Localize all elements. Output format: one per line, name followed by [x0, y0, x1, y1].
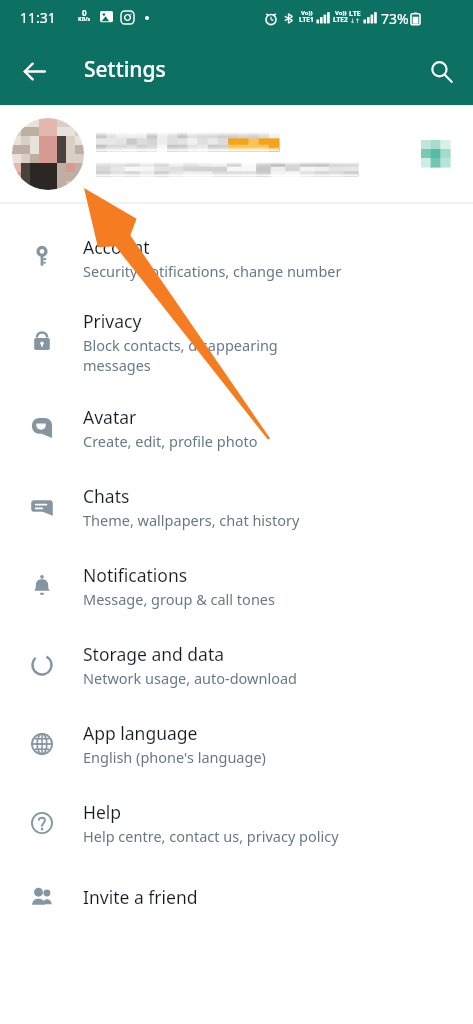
- staticText: KB/s: [78, 15, 91, 22]
- button[interactable]: Account: [0, 221, 473, 295]
- staticText: Settings: [84, 55, 166, 84]
- staticText: Chats: [83, 484, 130, 508]
- staticText: 73%: [381, 9, 409, 28]
- button[interactable]: Back: [12, 49, 56, 93]
- staticText: Privacy: [83, 309, 142, 333]
- staticText: Message, group & call tones: [83, 589, 275, 609]
- button[interactable]: Help: [0, 783, 473, 862]
- staticText: ↓↑: [350, 17, 361, 24]
- button[interactable]: Privacy: [0, 295, 473, 388]
- staticText: LTE: [349, 9, 361, 19]
- staticText: Account: [83, 235, 150, 259]
- staticText: Theme, wallpapers, chat history: [83, 510, 300, 530]
- button[interactable]: Chats: [0, 467, 473, 546]
- staticText: Storage and data: [83, 642, 225, 666]
- staticText: Security notifications, change number: [83, 261, 342, 281]
- button[interactable]: Storage and data: [0, 625, 473, 704]
- button[interactable]: Profile: [0, 105, 473, 202]
- staticText: 11:31: [20, 8, 56, 27]
- staticText: Block contacts, disappearing messages: [83, 335, 278, 375]
- staticText: 0: [82, 7, 87, 18]
- button[interactable]: App language: [0, 704, 473, 783]
- staticText: LTE2: [333, 15, 348, 24]
- staticText: Invite a friend: [83, 885, 198, 909]
- staticText: App language: [83, 721, 198, 745]
- staticText: Create, edit, profile photo: [83, 431, 258, 451]
- button[interactable]: Notifications: [0, 546, 473, 625]
- button[interactable]: Search: [418, 48, 464, 94]
- staticText: Help centre, contact us, privacy policy: [83, 826, 339, 846]
- staticText: Vo)): [301, 9, 313, 17]
- button[interactable]: Invite a friend: [0, 862, 473, 932]
- staticText: Avatar: [83, 405, 137, 429]
- staticText: LTE1: [299, 15, 314, 24]
- staticText: Vo)): [335, 9, 347, 17]
- button[interactable]: Avatar: [0, 388, 473, 467]
- staticText: Network usage, auto-download: [83, 668, 297, 688]
- staticText: Help: [83, 800, 122, 824]
- staticText: English (phone's language): [83, 747, 266, 767]
- staticText: Notifications: [83, 563, 188, 587]
